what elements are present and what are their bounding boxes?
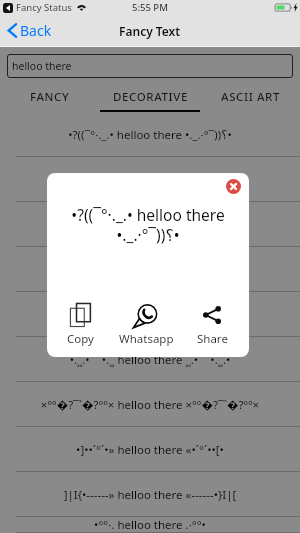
staticText: •.¸¸.•´¯`•.¸¸ helloo there ¸¸.•´¯`•.¸¸.• (6, 352, 294, 368)
button[interactable]: •.¸¸.•´¯`•.¸¸ helloo there ¸¸.•´¯`•.¸¸.• (0, 337, 300, 382)
staticText: ,,ø¤°°¤ø,, helloo there ,,ø¤°°¤ø,, (6, 172, 294, 188)
button[interactable]: •?((¯°·._.• helloo there •._.·°¯))؟• (0, 112, 300, 157)
staticText: •]••´°´•» helloo there «•´°´••[• (6, 442, 294, 458)
button[interactable]: Close dialog (226, 179, 241, 194)
button[interactable]: «°º¨¨º°» helloo there «°º¨¨º°» (0, 202, 300, 247)
staticText: Share (197, 331, 228, 347)
button[interactable]: Whatsapp (113, 300, 179, 350)
staticText: Fancy Status (16, 1, 72, 14)
button[interactable]: ×º°�?¯`�?°º× helloo there ×º°�?¯`�?°º× (0, 382, 300, 427)
staticText: Whatsapp (119, 331, 174, 347)
staticText: Fancy Text (119, 23, 181, 39)
button[interactable]: FANCY (0, 85, 100, 112)
staticText: •?((¯°·._.• helloo there •._.·°¯))؟• (61, 204, 235, 245)
staticText: •°• helloo there •°• (6, 307, 294, 323)
staticText: 5:55 PM (132, 1, 168, 14)
button[interactable]: •°• helloo there •°• (0, 292, 300, 337)
staticText: •°°·. helloo there .·°°• (6, 517, 294, 533)
staticText: ]|I{•------» helloo there «------•}I|[ (6, 487, 294, 503)
button[interactable]: ,,ø¤°°¤ø,, helloo there ,,ø¤°°¤ø,, (0, 157, 300, 202)
button[interactable]: ]|I{•------» helloo there «------•}I|[ (0, 472, 300, 517)
staticText: Back (20, 21, 52, 40)
staticText: •°¯°·. helloo there .·°¯°• (6, 262, 294, 278)
button[interactable]: Back (7, 21, 52, 40)
button[interactable]: Share (179, 300, 245, 350)
button[interactable]: ASCII ART (200, 85, 300, 112)
button[interactable]: Copy (47, 300, 113, 350)
staticText: Copy (67, 331, 94, 347)
button[interactable]: •]••´°´•» helloo there «•´°´••[• (0, 427, 300, 472)
staticText: FANCY (30, 89, 70, 105)
staticText: «°º¨¨º°» helloo there «°º¨¨º°» (6, 217, 294, 233)
button[interactable]: •°¯°·. helloo there .·°¯°• (0, 247, 300, 292)
button[interactable]: •°°·. helloo there .·°°• (0, 517, 300, 533)
staticText: DECORATIVE (113, 89, 188, 105)
staticText: ASCII ART (221, 89, 280, 105)
button[interactable]: DECORATIVE (100, 85, 200, 112)
staticText: helloo there (12, 59, 72, 73)
staticText: ×º°�?¯`�?°º× helloo there ×º°�?¯`�?°º× (6, 397, 294, 413)
staticText: •?((¯°·._.• helloo there •._.·°¯))؟• (6, 127, 294, 143)
